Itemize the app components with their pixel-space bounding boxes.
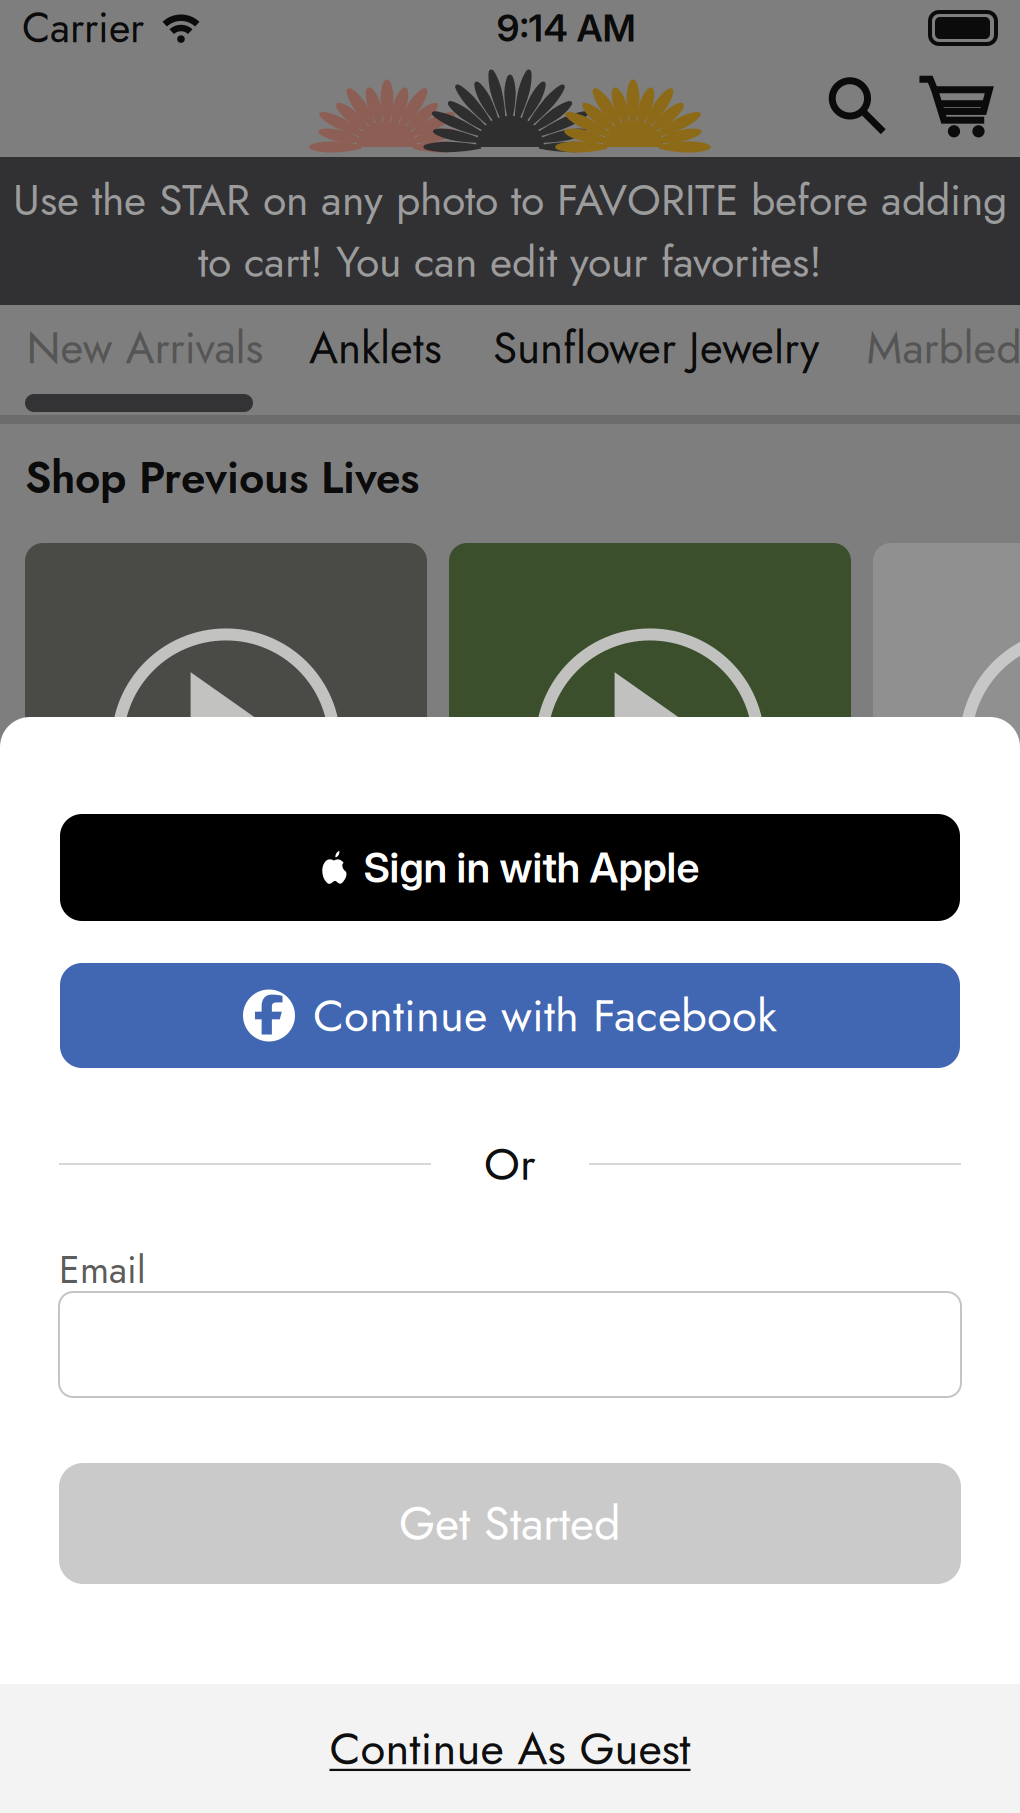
- staticText: Sunflower Jewelry: [493, 316, 819, 380]
- button[interactable]: Anklets: [303, 305, 448, 391]
- staticText: 9:14 AM: [496, 5, 635, 51]
- staticText: Sign in with Apple: [363, 842, 699, 892]
- button[interactable]: New Arrivals: [25, 305, 265, 391]
- button[interactable]: Sunflower Jewelry: [486, 305, 826, 391]
- button[interactable]: Continue As Guest: [0, 1684, 1020, 1813]
- button[interactable]: Continue with Facebook: [60, 963, 960, 1068]
- staticText: Marbled: [866, 316, 1020, 380]
- button[interactable]: Marbled: [864, 305, 1020, 391]
- staticText: Email: [59, 1243, 146, 1297]
- staticText: Get Started: [399, 1490, 621, 1557]
- button[interactable]: Sign in with Apple: [60, 814, 960, 921]
- button[interactable]: Cart: [910, 55, 998, 157]
- staticText: Use the STAR on any photo to FAVORITE be…: [13, 169, 1007, 231]
- button[interactable]: Search: [818, 56, 898, 156]
- staticText: Anklets: [309, 316, 442, 380]
- staticText: New Arrivals: [26, 316, 263, 380]
- staticText: to cart! You can edit your favorites!: [198, 231, 822, 293]
- staticText: Or: [484, 1131, 536, 1197]
- staticText: Shop Previous Lives: [25, 446, 419, 510]
- staticText: Continue As Guest: [329, 1716, 690, 1781]
- button[interactable]: Get Started: [59, 1463, 961, 1584]
- staticText: Continue with Facebook: [313, 983, 777, 1048]
- staticText: Carrier: [22, 0, 144, 58]
